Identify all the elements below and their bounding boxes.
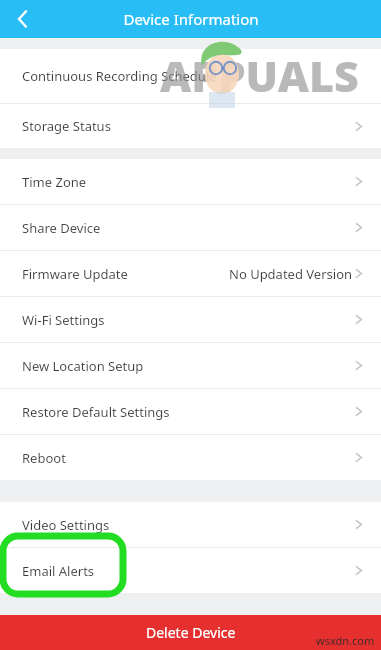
staticText: Wi-Fi Settings	[22, 311, 105, 329]
button[interactable]: Firmware Update	[0, 251, 381, 296]
button[interactable]: Time Zone	[0, 159, 381, 204]
staticText: No Updated Version	[229, 265, 353, 283]
staticText: Storage Status	[22, 117, 111, 135]
staticText: Delete Device	[146, 623, 236, 642]
button[interactable]: Continuous Recording Schedule	[0, 49, 381, 103]
staticText: Device Information	[123, 9, 259, 29]
staticText: wsxdn.com	[316, 633, 375, 648]
button[interactable]: Wi-Fi Settings	[0, 297, 381, 342]
staticText: Email Alerts	[22, 562, 95, 580]
staticText: Firmware Update	[22, 265, 128, 283]
button[interactable]: Reboot	[0, 435, 381, 480]
button[interactable]: Share Device	[0, 205, 381, 250]
staticText: Restore Default Settings	[22, 403, 170, 421]
button[interactable]: Storage Status	[0, 104, 381, 148]
button[interactable]: Email Alerts	[0, 548, 381, 593]
staticText: Share Device	[22, 219, 101, 237]
staticText: Time Zone	[22, 173, 87, 191]
staticText: Continuous Recording Schedule	[22, 67, 217, 85]
button[interactable]: Back	[0, 0, 44, 38]
button[interactable]: Video Settings	[0, 502, 381, 547]
button[interactable]: Delete Device	[0, 615, 381, 650]
button[interactable]: Restore Default Settings	[0, 389, 381, 434]
staticText: New Location Setup	[22, 357, 144, 375]
staticText: Video Settings	[22, 516, 110, 534]
button[interactable]: New Location Setup	[0, 343, 381, 388]
staticText: Reboot	[22, 449, 66, 467]
staticText: APPUALS	[160, 46, 359, 105]
